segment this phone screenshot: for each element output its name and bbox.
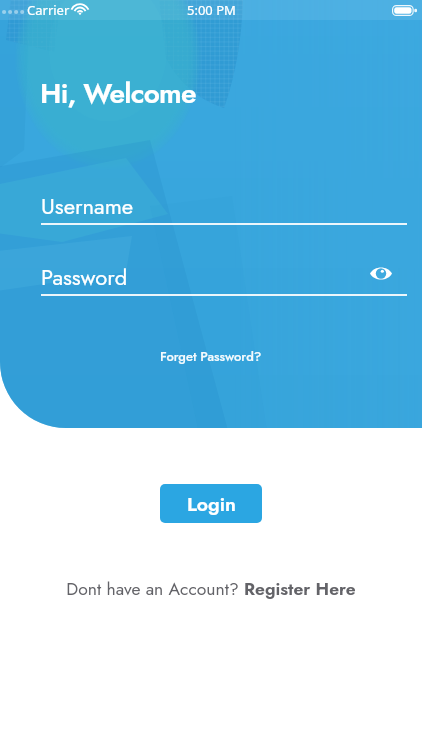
staticText: Hi, Welcome <box>40 73 196 113</box>
button[interactable]: Show password <box>368 260 394 286</box>
staticText: Login <box>187 490 236 518</box>
button[interactable]: Dont have an Account? Register Here <box>66 576 356 601</box>
staticText: Password <box>41 261 128 293</box>
staticText: Forget Password? <box>160 347 262 366</box>
button[interactable]: Login <box>160 484 262 523</box>
button[interactable]: Forget Password? <box>152 344 270 369</box>
staticText: Carrier <box>27 1 70 19</box>
staticText: 5:00 PM <box>187 1 236 19</box>
staticText: Dont have an Account? Register Here <box>66 576 356 601</box>
staticText: Username <box>41 190 134 222</box>
